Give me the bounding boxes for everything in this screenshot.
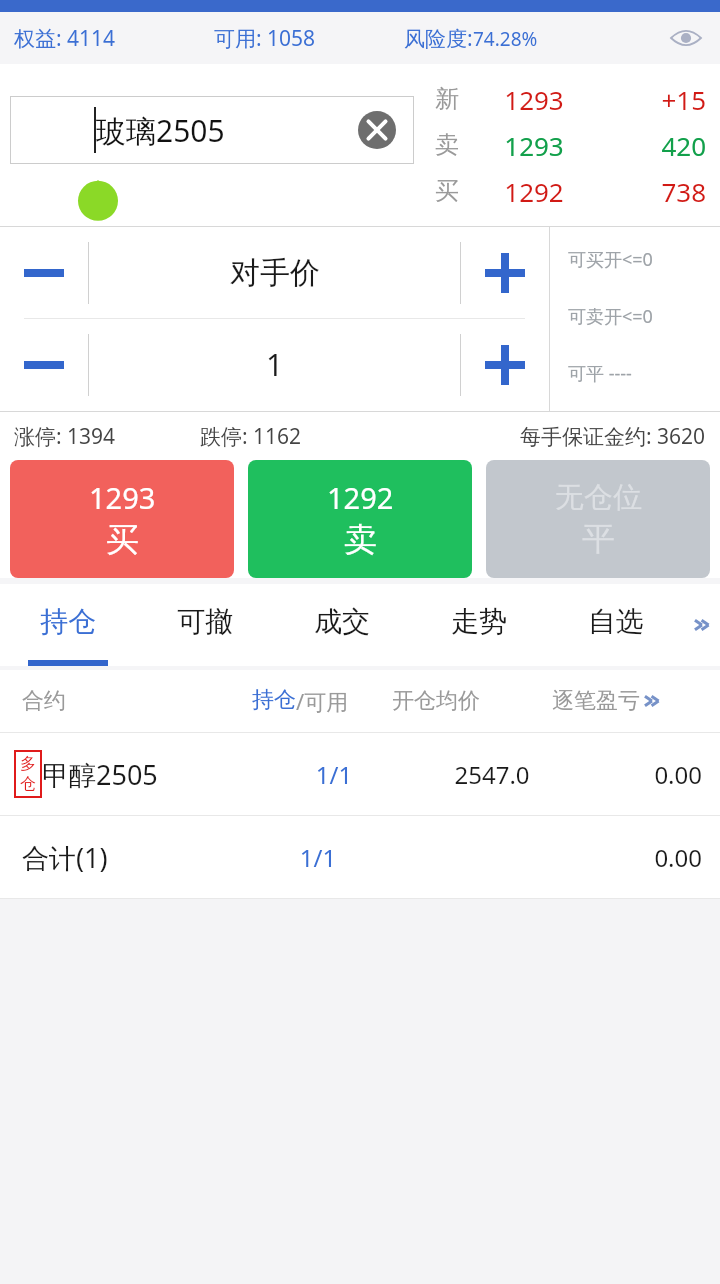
staticText: 无仓位	[555, 479, 642, 516]
button[interactable]: Increase	[461, 227, 549, 318]
button[interactable]: Decrease	[0, 319, 88, 410]
staticText: /可用	[296, 686, 349, 716]
staticText: 420	[594, 128, 706, 163]
staticText: 成交	[314, 604, 370, 639]
staticText: 甲醇2505	[42, 756, 158, 793]
button[interactable]: 自选	[547, 584, 684, 666]
button[interactable]: More tabs	[684, 584, 720, 666]
button[interactable]: 可撤	[136, 584, 273, 666]
staticText: 0.00	[402, 841, 702, 874]
staticText: 卖	[344, 519, 377, 561]
staticText: 0.00	[582, 758, 702, 791]
staticText: 1/1	[234, 841, 402, 874]
staticText: 每手保证金约: 3620	[520, 422, 706, 451]
staticText: 2547.0	[402, 758, 582, 791]
staticText: 738	[594, 174, 706, 209]
staticText: 1/1	[266, 758, 402, 791]
staticText: 新	[420, 84, 474, 114]
staticText: 买	[420, 176, 474, 206]
staticText: 可平 ----	[568, 361, 632, 386]
button[interactable]: 走势	[410, 584, 547, 666]
button[interactable]: 无仓位	[486, 460, 710, 578]
staticText: 合计(1)	[22, 839, 108, 876]
staticText: 可用: 1058	[214, 24, 404, 53]
staticText: 平	[582, 518, 615, 560]
staticText: 逐笔盈亏	[552, 687, 640, 715]
button[interactable]: 持仓	[0, 584, 136, 666]
staticText: 玻璃2505	[96, 110, 225, 151]
staticText: 权益: 4114	[14, 24, 214, 53]
staticText: 涨停: 1394	[14, 422, 200, 451]
staticText: 走势	[451, 604, 507, 639]
button[interactable]: 1293	[10, 460, 234, 578]
staticText: 1293	[89, 478, 156, 517]
staticText: 开仓均价	[392, 687, 552, 715]
staticText: 风险度:	[404, 24, 473, 53]
button[interactable]: 玻璃2505	[10, 96, 414, 164]
button[interactable]: 多	[0, 733, 720, 815]
staticText: 仓	[20, 774, 36, 794]
staticText: 卖	[420, 130, 474, 160]
button[interactable]: Decrease	[0, 227, 88, 318]
staticText: 跌停: 1162	[200, 422, 302, 451]
button[interactable]: Toggle visibility	[666, 18, 706, 58]
button[interactable]: 对手价	[89, 227, 460, 318]
staticText: +15	[594, 82, 706, 117]
button[interactable]: 成交	[273, 584, 410, 666]
staticText: 合约	[22, 687, 252, 715]
staticText: 1293	[474, 82, 594, 117]
staticText: 对手价	[230, 254, 320, 292]
staticText: 买	[106, 519, 139, 561]
staticText: 可撤	[177, 604, 233, 639]
staticText: 1292	[327, 478, 394, 517]
staticText: 持仓	[40, 604, 96, 639]
button[interactable]: Clear	[358, 111, 396, 149]
staticText: 自选	[588, 604, 644, 639]
staticText: 1	[266, 344, 284, 385]
staticText: 74.28%	[473, 26, 538, 52]
button[interactable]: 1292	[248, 460, 472, 578]
staticText: 可买开<=0	[568, 247, 653, 272]
staticText: 1293	[474, 128, 594, 163]
staticText: 持仓	[252, 686, 296, 714]
button[interactable]: Increase	[461, 319, 549, 410]
staticText: 1292	[474, 174, 594, 209]
staticText: 可卖开<=0	[568, 304, 653, 329]
staticText: 多	[20, 754, 36, 774]
button[interactable]: 1	[89, 319, 460, 410]
